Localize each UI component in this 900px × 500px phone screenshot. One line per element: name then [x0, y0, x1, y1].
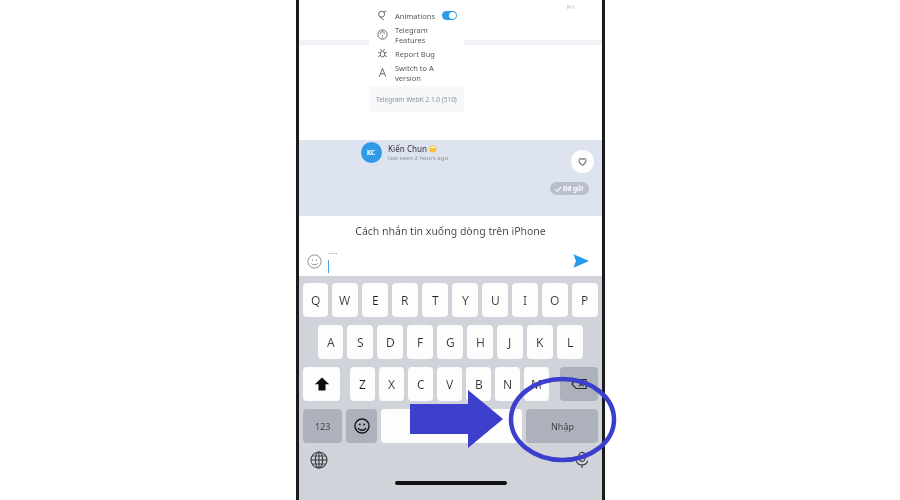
button[interactable]: O [542, 283, 568, 317]
button[interactable]: S [347, 325, 373, 359]
staticText: I [523, 292, 528, 308]
button[interactable]: L [557, 325, 583, 359]
staticText: Đã gửi [563, 184, 584, 193]
button[interactable]: X [379, 367, 404, 401]
button[interactable]: Switch to A version [369, 63, 464, 82]
staticText: O [550, 292, 560, 308]
staticText: A [327, 334, 335, 350]
button[interactable]: D [377, 325, 403, 359]
button[interactable]: A [318, 325, 343, 359]
button[interactable]: M [524, 367, 549, 401]
staticText: Z [359, 376, 366, 392]
button[interactable]: P [572, 283, 598, 317]
staticText: Report Bug [395, 49, 435, 59]
staticText: Animations [395, 11, 435, 21]
staticText: KC [367, 148, 376, 157]
staticText: Nhập [551, 420, 574, 432]
staticText: N [503, 376, 513, 392]
button[interactable]: Backspace [560, 367, 598, 401]
button[interactable]: E [362, 283, 388, 317]
staticText: Q [311, 292, 321, 308]
button[interactable]: C [408, 367, 433, 401]
button[interactable]: V [437, 367, 462, 401]
staticText: M [531, 376, 542, 392]
button[interactable]: Emoji keyboard [346, 409, 377, 443]
button[interactable]: Animations toggle [442, 11, 457, 20]
staticText: 123 [315, 420, 331, 432]
button[interactable]: Send [570, 250, 592, 272]
button[interactable]: Q [303, 283, 328, 317]
button[interactable]: B [466, 367, 491, 401]
staticText: B [475, 376, 483, 392]
staticText: X [388, 376, 396, 392]
button[interactable]: Y [452, 283, 478, 317]
button[interactable]: I [512, 283, 538, 317]
staticText: V [446, 376, 454, 392]
staticText: C [417, 376, 425, 392]
button[interactable]: Đã gửi [550, 182, 589, 195]
button[interactable]: G [437, 325, 463, 359]
button[interactable]: Shift [303, 367, 340, 401]
button[interactable]: Z [350, 367, 375, 401]
staticText: Cách nhắn tin xuống dòng trên iPhone [355, 224, 546, 238]
button[interactable]: K [527, 325, 553, 359]
button[interactable]: N [495, 367, 520, 401]
staticText: W [339, 292, 351, 308]
button[interactable]: U [482, 283, 508, 317]
staticText: U [491, 292, 500, 308]
button[interactable]: 123 [303, 409, 342, 443]
staticText: E [372, 292, 379, 308]
button[interactable]: KC [361, 140, 521, 164]
staticText: D [386, 334, 395, 350]
button[interactable]: Change keyboard [309, 450, 329, 470]
staticText: Fri [567, 3, 575, 11]
button[interactable]: Nhập [526, 409, 598, 443]
staticText: Switch to A version [395, 63, 457, 82]
staticText: last seen 2 hours ago [388, 154, 449, 162]
staticText: Telegram Features [395, 25, 457, 44]
button[interactable]: T [422, 283, 448, 317]
button[interactable]: Animations [369, 6, 464, 25]
staticText: G [446, 334, 455, 350]
staticText: Kiến Chun [388, 143, 428, 154]
staticText: T [432, 292, 439, 308]
staticText: ····· [328, 249, 338, 259]
button[interactable]: Report Bug [369, 44, 464, 63]
button[interactable]: H [467, 325, 493, 359]
button[interactable]: R [392, 283, 418, 317]
staticText: P [581, 292, 589, 308]
button[interactable]: J [497, 325, 523, 359]
button[interactable]: F [407, 325, 433, 359]
button[interactable]: Dictation [572, 450, 592, 470]
button[interactable]: Emoji [307, 254, 322, 269]
button[interactable] [381, 409, 522, 443]
button[interactable]: Telegram Features [369, 25, 464, 44]
staticText: Y [462, 292, 469, 308]
staticText: J [508, 334, 512, 350]
staticText: Telegram WebK 2.1.0 (510) [376, 95, 457, 104]
staticText: S [357, 334, 364, 350]
staticText: K [536, 334, 544, 350]
staticText: L [567, 334, 574, 350]
button[interactable]: W [332, 283, 358, 317]
staticText: H [476, 334, 485, 350]
staticText: F [417, 334, 424, 350]
button[interactable]: Like [571, 150, 594, 173]
staticText: R [401, 292, 409, 308]
